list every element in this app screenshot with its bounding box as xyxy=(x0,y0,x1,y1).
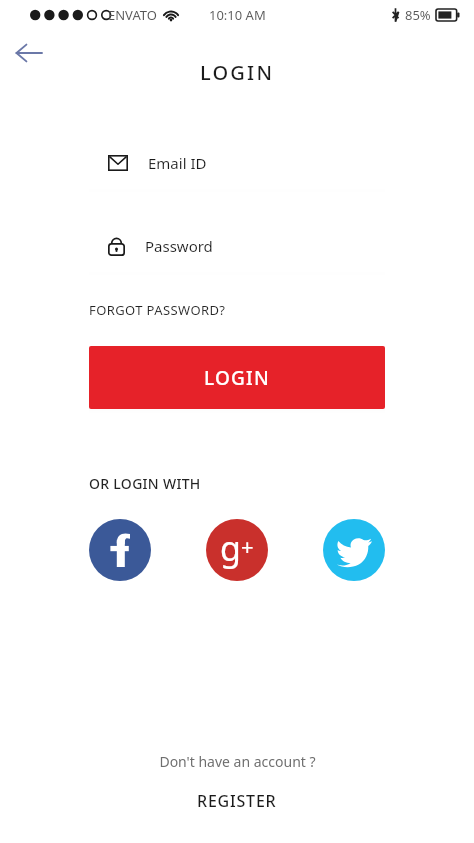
button[interactable]: Sign in with Google Plus xyxy=(206,519,268,581)
button[interactable]: Email ID xyxy=(89,136,385,189)
staticText: g xyxy=(220,525,241,571)
staticText: Password xyxy=(145,236,213,256)
staticText: Email ID xyxy=(148,153,207,173)
button[interactable]: Back xyxy=(8,32,50,74)
staticText: + xyxy=(241,531,254,561)
button[interactable]: Sign in with Twitter xyxy=(323,519,385,581)
button[interactable]: FORGOT PASSWORD? xyxy=(89,298,226,322)
staticText: OR LOGIN WITH xyxy=(89,474,201,493)
button[interactable]: LOGIN xyxy=(89,346,385,409)
button[interactable]: REGISTER xyxy=(187,787,287,815)
staticText: 85% xyxy=(405,6,431,24)
staticText: LOGIN xyxy=(204,365,270,391)
staticText: FORGOT PASSWORD? xyxy=(89,301,226,319)
staticText: LOGIN xyxy=(200,59,275,86)
staticText: Don't have an account ? xyxy=(159,752,316,771)
button[interactable]: Sign in with Facebook xyxy=(89,519,151,581)
staticText: ENVATO xyxy=(108,6,157,24)
button[interactable]: Password xyxy=(89,219,385,272)
staticText: 10:10 AM xyxy=(209,6,266,24)
staticText: REGISTER xyxy=(197,790,277,812)
